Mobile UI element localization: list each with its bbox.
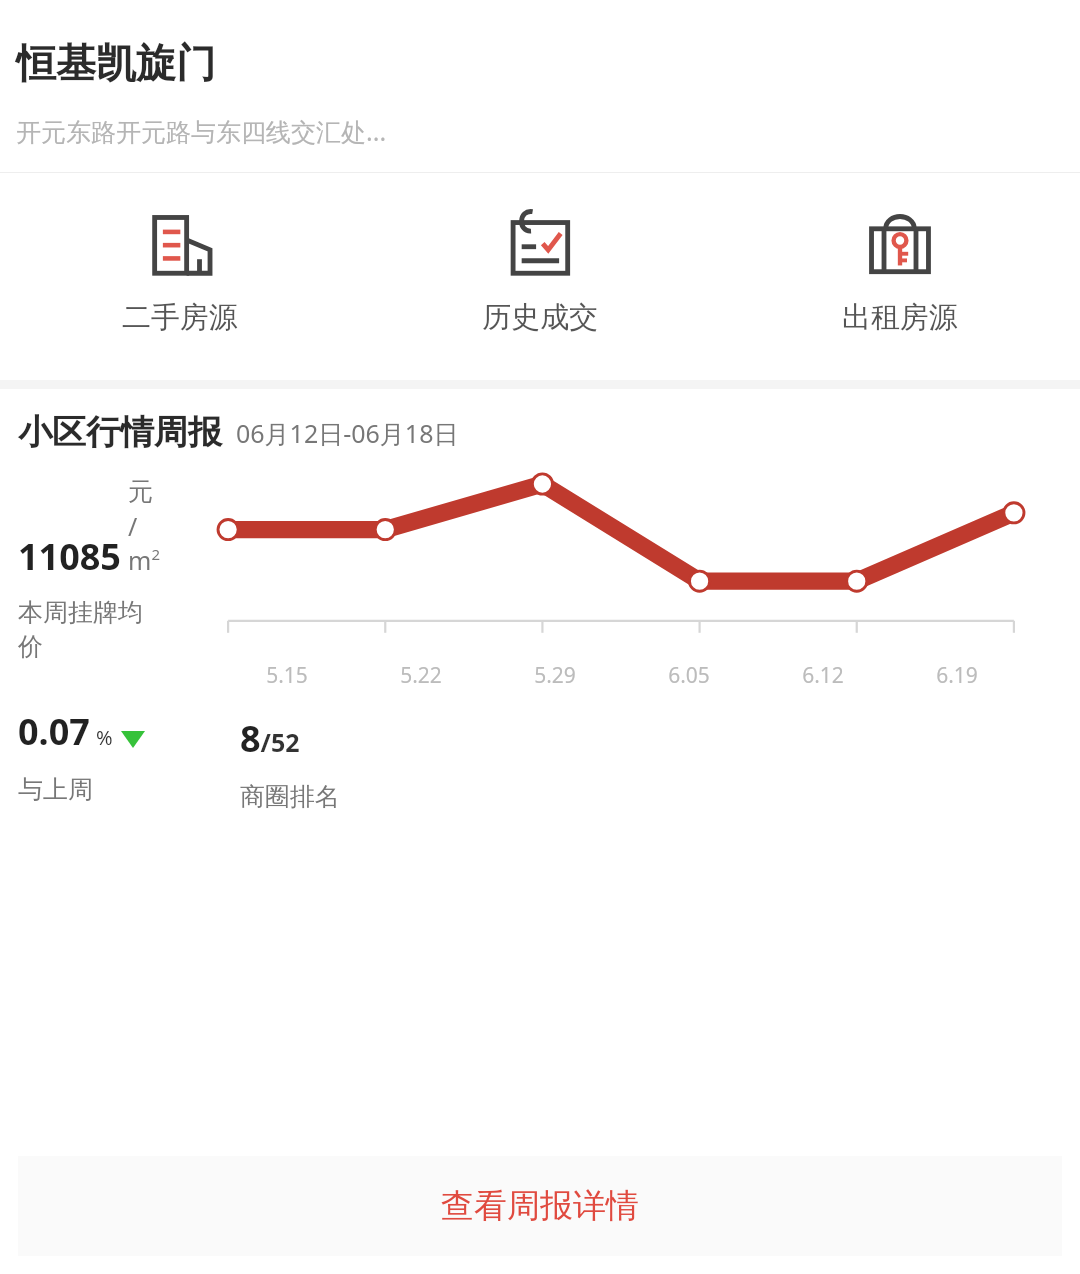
button[interactable]: 二手房源: [0, 205, 360, 336]
staticText: 出租房源: [842, 299, 958, 336]
other: 出租房源: [861, 205, 939, 283]
staticText: %: [96, 724, 113, 751]
staticText: 6.12: [802, 661, 844, 690]
staticText: 查看周报详情: [441, 1185, 639, 1227]
staticText: 开元东路开元路与东四线交汇处...: [16, 114, 387, 148]
staticText: 二手房源: [122, 299, 238, 336]
staticText: 商圈排名: [240, 781, 340, 812]
other: 二手房源: [141, 205, 219, 283]
staticText: 11085: [18, 532, 121, 581]
staticText: 5.29: [534, 661, 576, 690]
staticText: 元/m2: [128, 476, 162, 577]
other: 历史成交: [501, 205, 579, 283]
staticText: 与上周: [18, 774, 93, 805]
staticText: 本周挂牌均价: [18, 597, 162, 663]
staticText: 5.15: [266, 661, 308, 690]
button[interactable]: 出租房源: [720, 205, 1080, 336]
staticText: 6.19: [936, 661, 978, 690]
staticText: 0.07: [18, 707, 90, 756]
button[interactable]: 历史成交: [360, 205, 720, 336]
staticText: 小区行情周报: [18, 411, 222, 454]
staticText: 历史成交: [482, 299, 598, 336]
staticText: 6.05: [668, 661, 710, 690]
staticText: 5.22: [400, 661, 442, 690]
staticText: 06月12日-06月18日: [236, 416, 459, 450]
staticText: 8/52: [240, 714, 300, 763]
staticText: 恒基凯旋门: [16, 38, 216, 88]
button[interactable]: 查看周报详情: [18, 1156, 1062, 1256]
